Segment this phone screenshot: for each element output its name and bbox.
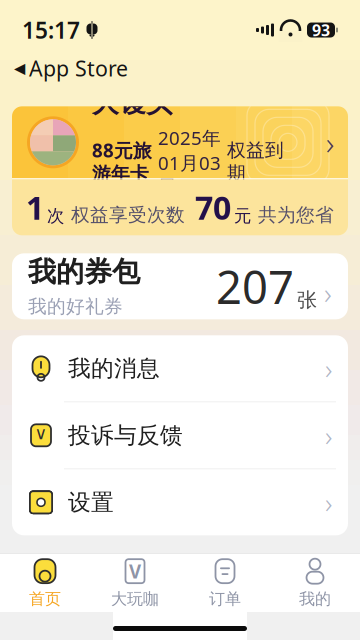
button[interactable]: 首页 bbox=[0, 554, 90, 612]
staticText: 大馒头 bbox=[92, 87, 173, 119]
staticText: 我的好礼券 bbox=[28, 295, 123, 318]
button[interactable]: V bbox=[90, 554, 180, 612]
staticText: 元 bbox=[234, 205, 251, 227]
staticText: 投诉与反馈 bbox=[68, 421, 183, 449]
staticText: 207 bbox=[216, 256, 294, 316]
staticText: App Store bbox=[29, 54, 128, 82]
staticText: › bbox=[326, 121, 334, 164]
staticText: 我的 bbox=[299, 589, 331, 609]
staticText: ∨ bbox=[34, 423, 47, 443]
staticText: 次 bbox=[47, 205, 64, 227]
staticText: ◀ bbox=[14, 60, 25, 76]
staticText: › bbox=[324, 273, 332, 312]
staticText: 1 bbox=[26, 186, 44, 229]
staticText: 我的券包 bbox=[28, 255, 140, 289]
button[interactable]: 我的券包 bbox=[12, 253, 348, 319]
staticText: 张 bbox=[297, 288, 317, 312]
button[interactable]: 订单 bbox=[180, 554, 270, 612]
staticText: V bbox=[129, 559, 141, 584]
staticText: 首页 bbox=[29, 589, 61, 609]
button[interactable]: ◀ bbox=[10, 52, 132, 84]
button[interactable]: ∨ bbox=[12, 402, 348, 468]
staticText: 93 bbox=[312, 19, 330, 41]
staticText: 订单 bbox=[209, 589, 241, 609]
staticText: › bbox=[325, 350, 332, 387]
button[interactable]: 我的消息 bbox=[12, 335, 348, 401]
staticText: › bbox=[325, 484, 332, 521]
staticText: 共为您省 bbox=[258, 204, 334, 226]
staticText: › bbox=[325, 417, 332, 454]
staticText: 88元旅游年卡 bbox=[92, 138, 152, 185]
staticText: 权益到期 bbox=[227, 139, 284, 185]
staticText: 权益享受次数 bbox=[71, 204, 185, 226]
staticText: 大玩咖 bbox=[111, 589, 159, 609]
staticText: 70 bbox=[195, 186, 231, 229]
button[interactable]: 设置 bbox=[12, 469, 348, 535]
staticText: 2025年01月03日 bbox=[158, 125, 221, 198]
button[interactable]: 我的 bbox=[270, 554, 360, 612]
staticText: 我的消息 bbox=[68, 354, 160, 382]
staticText: 设置 bbox=[68, 488, 114, 516]
button[interactable]: 大馒头 bbox=[12, 106, 348, 235]
staticText: 15:17 bbox=[22, 15, 80, 45]
